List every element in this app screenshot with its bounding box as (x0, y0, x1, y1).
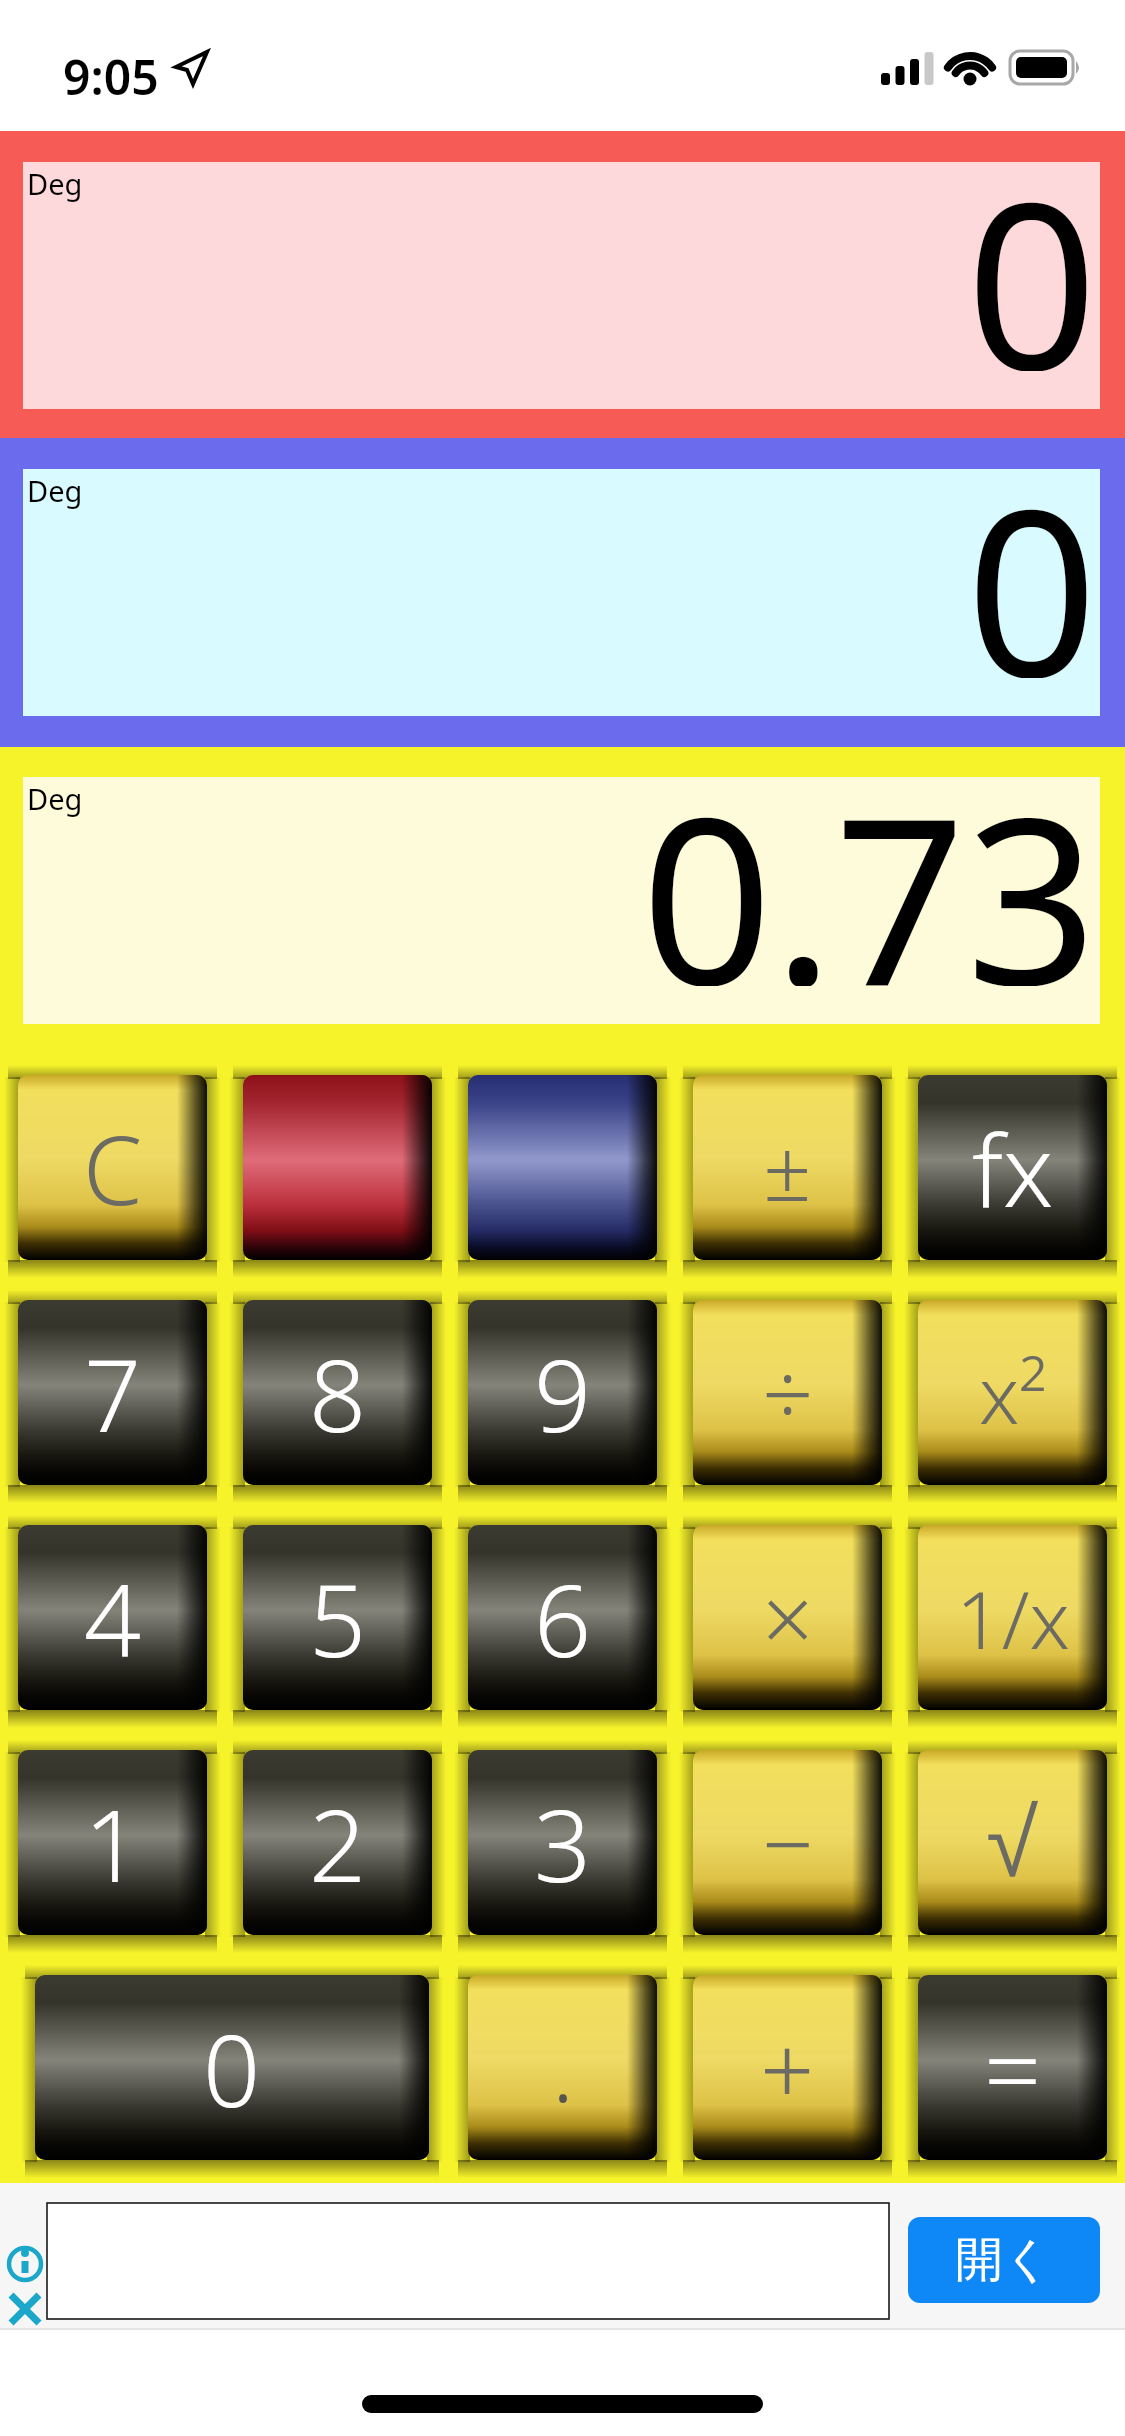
staticText: 8 (309, 1325, 367, 1461)
staticText: . (552, 2006, 574, 2129)
staticText: 0 (203, 2000, 261, 2136)
staticText: 0 (966, 431, 1098, 678)
button[interactable]: 6 (468, 1525, 657, 1710)
staticText: = (984, 2000, 1042, 2136)
staticText: 9:05 (63, 44, 159, 109)
button[interactable]: = (918, 1975, 1107, 2160)
button[interactable]: + (693, 1975, 882, 2160)
staticText: 0.73 (641, 739, 1098, 986)
button[interactable]: C (18, 1075, 207, 1260)
staticText: ± (763, 1110, 812, 1226)
staticText: ÷ (762, 1331, 814, 1454)
button[interactable]: 3 (468, 1750, 657, 1935)
button[interactable]: ÷ (693, 1300, 882, 1485)
button[interactable]: 0 (35, 1975, 429, 2160)
button[interactable]: ± (693, 1075, 882, 1260)
staticText: 7 (84, 1325, 142, 1461)
button[interactable]: 9 (468, 1300, 657, 1485)
staticText: √ (986, 1790, 1039, 1896)
button[interactable]: 1/x (918, 1525, 1107, 1710)
button[interactable]: × (693, 1525, 882, 1710)
staticText: 1/x (956, 1563, 1070, 1672)
staticText: Deg (27, 471, 83, 510)
button[interactable]: 8 (243, 1300, 432, 1485)
button[interactable]: √ (918, 1750, 1107, 1935)
staticText: 4 (84, 1550, 142, 1686)
staticText: 5 (309, 1550, 367, 1686)
staticText: + (760, 2003, 815, 2132)
button[interactable]: fx (918, 1075, 1107, 1260)
button[interactable]: − (693, 1750, 882, 1935)
staticText: 9 (534, 1325, 592, 1461)
button[interactable]: 1 (18, 1750, 207, 1935)
button[interactable]: . (468, 1975, 657, 2160)
staticText: Deg (27, 164, 83, 203)
button[interactable] (468, 1075, 657, 1260)
button[interactable]: 4 (18, 1525, 207, 1710)
staticText: Deg (27, 779, 83, 818)
staticText: 0 (966, 124, 1098, 371)
button[interactable]: 2 (243, 1750, 432, 1935)
staticText: − (762, 1781, 814, 1904)
staticText: x² (979, 1338, 1047, 1447)
staticText: C (83, 1103, 143, 1232)
staticText: 6 (534, 1550, 592, 1686)
staticText: 2 (309, 1775, 367, 1911)
button[interactable] (47, 2203, 889, 2319)
button[interactable]: x² (918, 1300, 1107, 1485)
button[interactable]: 7 (18, 1300, 207, 1485)
staticText: 3 (534, 1775, 592, 1911)
staticText: 開く (955, 2230, 1053, 2290)
staticText: fx (972, 1100, 1054, 1236)
button[interactable]: 開く (908, 2217, 1100, 2303)
button[interactable] (243, 1075, 432, 1260)
staticText: 1 (84, 1775, 142, 1911)
staticText: × (762, 1556, 814, 1679)
button[interactable]: 5 (243, 1525, 432, 1710)
